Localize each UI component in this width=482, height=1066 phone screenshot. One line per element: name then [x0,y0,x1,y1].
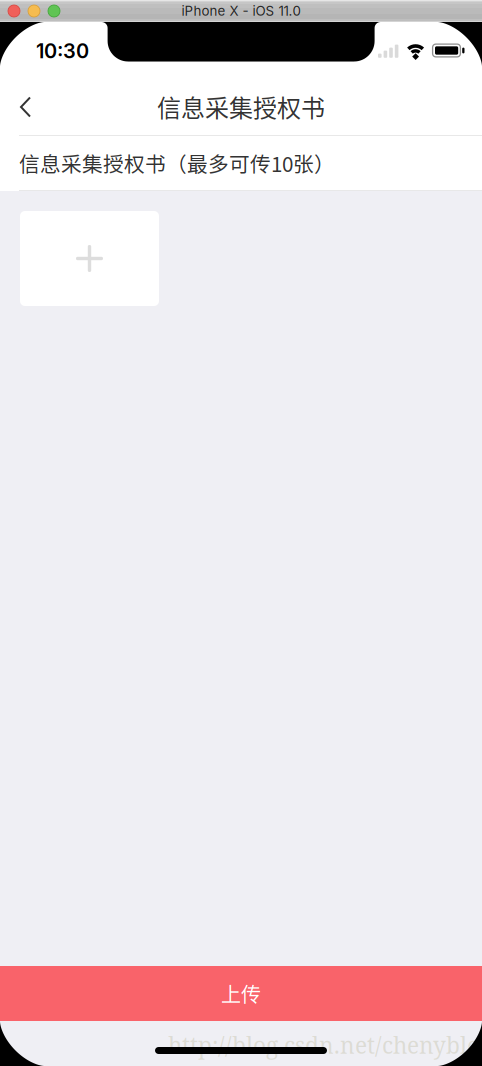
staticText: 信息采集授权书（最多可传10张） [19,148,335,178]
staticText: 信息采集授权书 [157,89,325,124]
button[interactable]: Add photo [20,211,159,306]
button[interactable]: 上传 [0,966,482,1021]
staticText: 上传 [221,979,261,1008]
staticText: 10:30 [36,39,89,63]
staticText: http://blog.csdn.net/chenyblog [168,1030,482,1060]
button[interactable]: Back [0,78,50,135]
staticText: iPhone X - iOS 11.0 [181,3,300,19]
